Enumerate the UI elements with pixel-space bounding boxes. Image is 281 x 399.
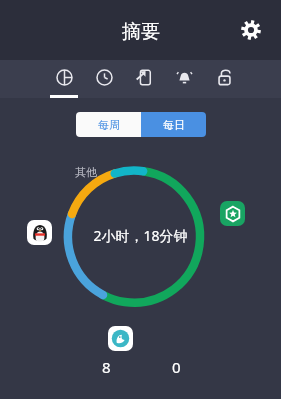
button[interactable]: 每日	[141, 112, 206, 137]
button[interactable]: bell	[164, 60, 204, 98]
button[interactable]: Browser app	[108, 326, 133, 351]
staticText: 每周	[98, 118, 120, 132]
staticText: 每日	[163, 118, 185, 132]
staticText: 其他	[75, 165, 97, 179]
staticText: 摘要	[122, 20, 160, 44]
button[interactable]: 每周	[76, 112, 141, 137]
button[interactable]: launch	[124, 60, 164, 98]
staticText: 8	[102, 357, 111, 377]
button[interactable]: chart	[44, 60, 84, 98]
button[interactable]: QQ	[27, 220, 52, 245]
staticText: 2小时，18分钟	[0, 226, 281, 245]
button[interactable]: lock	[204, 60, 244, 98]
button[interactable]: Security app	[220, 201, 245, 226]
button[interactable]: Settings	[231, 10, 271, 50]
staticText: 0	[172, 357, 181, 377]
button[interactable]: clock	[84, 60, 124, 98]
